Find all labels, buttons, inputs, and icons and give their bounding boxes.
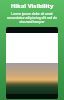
staticText: Hikal Visibility: [0, 2, 64, 10]
staticText: Lorem ipsum dolor sit amet consectetur a…: [4, 12, 60, 24]
button[interactable]: [6, 27, 58, 99]
